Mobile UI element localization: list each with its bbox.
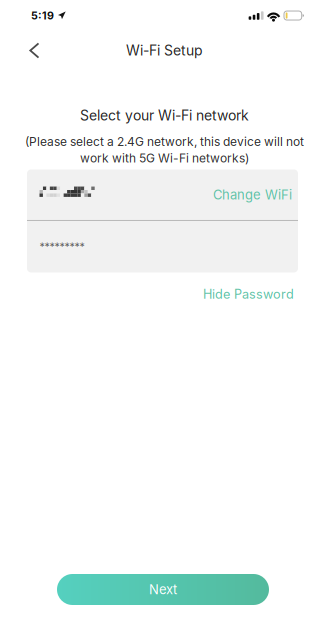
- staticText: Wi-Fi Setup: [126, 42, 203, 59]
- button[interactable]: Back: [18, 33, 50, 67]
- staticText: Hide Password: [203, 286, 294, 302]
- button[interactable]: Next: [57, 574, 269, 605]
- staticText: Select your Wi-Fi network: [80, 107, 249, 124]
- staticText: *********: [39, 240, 84, 253]
- staticText: work with 5G Wi-Fi networks): [80, 151, 249, 165]
- button[interactable]: Hide Password: [203, 286, 294, 302]
- staticText: Change WiFi: [213, 187, 292, 203]
- staticText: (Please select a 2.4G network, this devi…: [25, 134, 304, 149]
- staticText: 5:19: [31, 9, 54, 22]
- button[interactable]: Change WiFi: [213, 187, 292, 203]
- staticText: Next: [149, 582, 177, 597]
